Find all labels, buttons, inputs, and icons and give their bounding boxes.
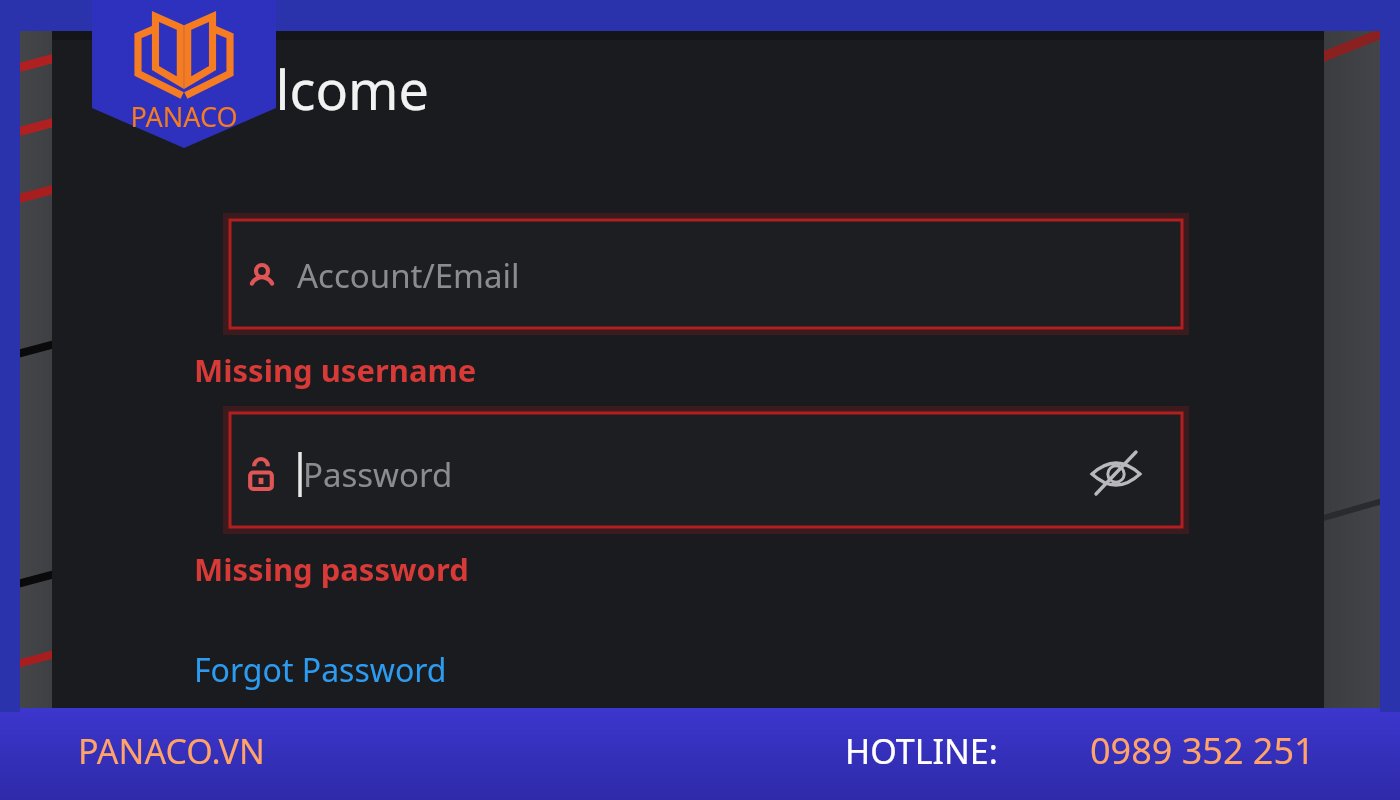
button[interactable]: Show password (1086, 444, 1148, 506)
staticText: Missing username (194, 349, 477, 391)
staticText: Password (303, 452, 453, 497)
staticText: Forgot Password (194, 648, 447, 692)
staticText: HOTLINE: (845, 728, 998, 774)
button[interactable] (230, 413, 1182, 527)
staticText: Welcome (196, 52, 430, 126)
staticText: Account/Email (297, 253, 520, 298)
staticText: Missing password (194, 548, 469, 590)
button[interactable] (230, 220, 1182, 328)
staticText: PANACO (92, 98, 276, 138)
staticText: 0989 352 251 (1090, 726, 1315, 775)
staticText: PANACO.VN (78, 728, 265, 774)
button[interactable]: Forgot Password (194, 648, 558, 696)
